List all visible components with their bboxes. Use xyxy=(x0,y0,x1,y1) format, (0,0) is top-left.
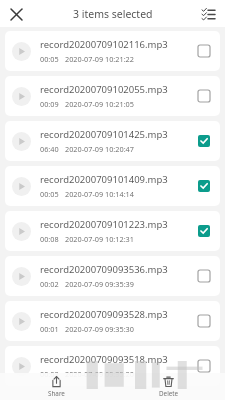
button[interactable]: Play xyxy=(12,357,31,376)
staticText: 2020-07-09 10:12:31 xyxy=(65,234,134,244)
staticText: 2020-07-09 10:14:14 xyxy=(65,189,134,199)
staticText: record20200709101425.mp3 xyxy=(40,128,168,141)
button[interactable]: Selected xyxy=(187,121,220,161)
button[interactable]: Play xyxy=(5,211,220,251)
button[interactable]: Not selected xyxy=(187,301,220,341)
staticText: 2020-07-09 10:21:22 xyxy=(65,54,134,64)
button[interactable]: Close xyxy=(5,3,27,25)
staticText: record20200709093528.mp3 xyxy=(40,308,168,321)
staticText: record20200709093518.mp3 xyxy=(40,353,168,366)
button[interactable]: Play xyxy=(5,166,220,206)
staticText: Delete xyxy=(159,389,179,398)
staticText: record20200709101409.mp3 xyxy=(40,173,168,186)
button[interactable]: Not selected xyxy=(187,31,220,71)
button[interactable]: Play xyxy=(12,177,31,196)
button[interactable]: Selected xyxy=(187,166,220,206)
staticText: 00:05 xyxy=(40,54,59,64)
button[interactable]: Play xyxy=(12,222,31,241)
button[interactable]: Not selected xyxy=(187,76,220,116)
staticText: 00:03 xyxy=(40,369,59,379)
staticText: 06:40 xyxy=(40,144,59,154)
button[interactable]: Not selected xyxy=(187,346,220,386)
button[interactable]: Play xyxy=(5,31,220,71)
button[interactable]: Play xyxy=(12,132,31,151)
staticText: record20200709102116.mp3 xyxy=(40,38,168,51)
button[interactable]: Play xyxy=(12,42,31,61)
staticText: 00:05 xyxy=(40,189,59,199)
button[interactable]: Play xyxy=(5,121,220,161)
button[interactable]: Play xyxy=(12,312,31,331)
staticText: 2020-07-09 09:35:30 xyxy=(65,324,134,334)
staticText: 2020-07-09 09:35:20 xyxy=(65,369,134,379)
staticText: record20200709102055.mp3 xyxy=(40,83,168,96)
staticText: 00:09 xyxy=(40,99,59,109)
button[interactable]: Play xyxy=(5,256,220,296)
button[interactable]: Play xyxy=(12,267,31,286)
staticText: Share xyxy=(48,389,65,398)
staticText: 3 items selected xyxy=(73,7,153,21)
button[interactable]: Select all xyxy=(197,3,219,25)
staticText: record20200709093536.mp3 xyxy=(40,263,168,276)
staticText: record20200709101223.mp3 xyxy=(40,218,168,231)
staticText: 00:02 xyxy=(40,279,59,289)
staticText: 00:08 xyxy=(40,234,59,244)
button[interactable]: Play xyxy=(12,87,31,106)
staticText: 00:01 xyxy=(40,324,59,334)
button[interactable]: Selected xyxy=(187,211,220,251)
button[interactable]: Delete xyxy=(112,373,225,400)
button[interactable]: Share xyxy=(0,373,112,400)
button[interactable]: Play xyxy=(5,346,220,386)
staticText: 2020-07-09 10:20:47 xyxy=(65,144,134,154)
staticText: 2020-07-09 10:21:05 xyxy=(65,99,134,109)
staticText: 2020-07-09 09:35:39 xyxy=(65,279,134,289)
button[interactable]: Not selected xyxy=(187,256,220,296)
button[interactable]: Play xyxy=(5,76,220,116)
button[interactable]: Play xyxy=(5,301,220,341)
